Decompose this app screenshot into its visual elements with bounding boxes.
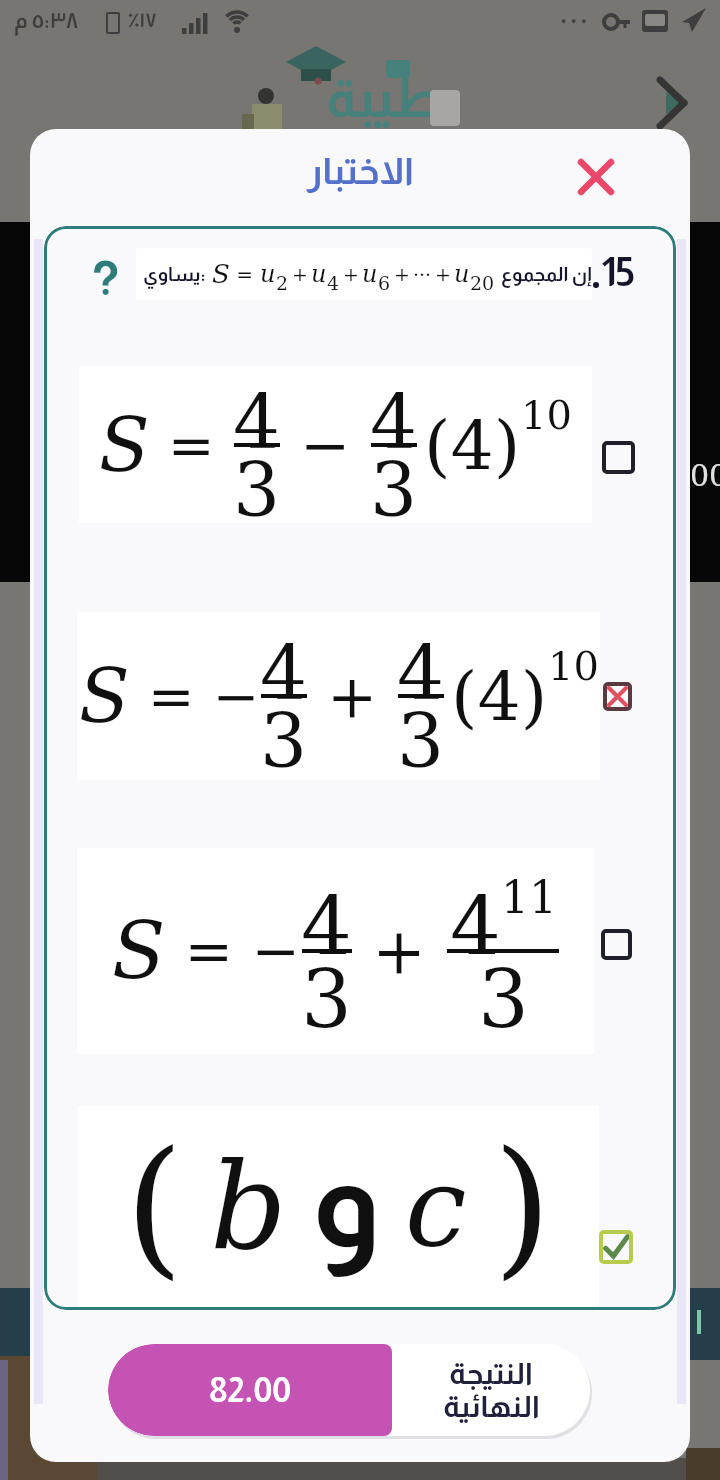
staticText: ··· [413,263,432,285]
staticText: = − [130,664,260,729]
staticText: + [308,661,397,731]
staticText: 00 [690,458,720,493]
staticText: u [260,260,276,288]
staticText: u [362,260,378,288]
staticText: 4 [397,630,445,694]
staticText: S [112,906,166,997]
staticText: ( [125,1119,184,1294]
staticText: + [343,263,359,285]
staticText: 3 [478,953,529,1022]
staticText: S [99,402,150,488]
staticText: c [405,1143,467,1271]
staticText: • • • [560,10,588,27]
staticText: 15 [601,250,635,295]
staticText: إن المجموع [501,264,592,285]
staticText: u [454,260,470,288]
staticText: = − [166,917,301,985]
staticText: ٪١٧ [128,9,157,31]
staticText: 3 [370,447,418,511]
staticText: و [311,1131,381,1274]
staticText: 20 [470,272,495,294]
staticText: 3 [260,698,308,762]
staticText: النتيجة [449,1357,533,1390]
staticText: (4) [451,657,548,736]
staticText: + [352,914,447,989]
staticText: + [292,263,308,285]
staticText: u [311,260,327,288]
staticText: 4 [233,379,281,443]
staticText: 11 [501,872,557,923]
staticText: يساوي: [143,264,206,285]
staticText: + [435,263,451,285]
staticText: طيبة [326,68,444,128]
staticText: 6 [378,272,391,294]
staticText: S [212,259,230,289]
staticText: = [230,263,260,286]
staticText: 10 [521,392,572,439]
staticText: ? [91,252,120,306]
staticText: 3 [397,698,445,762]
staticText: + [394,263,410,285]
staticText: 3 [301,953,352,1022]
staticText: الاختبار [307,151,414,192]
staticText: 2 [276,272,289,294]
staticText: S [79,653,130,739]
staticText: = [150,413,233,478]
staticText: 4 [260,630,308,694]
staticText: − [281,410,370,480]
staticText: 4 [370,379,418,443]
staticText: b [210,1137,287,1277]
staticText: 82.00 [209,1371,292,1409]
staticText: 4 [301,880,352,949]
staticText: 4 [450,880,501,949]
staticText: 3 [233,447,281,511]
staticText: 4 [327,272,340,294]
staticText: النهائية [443,1390,540,1423]
staticText: (4) [424,406,521,485]
staticText: ) [493,1119,552,1294]
staticText: ٥:٣٨ م [14,8,79,33]
staticText: 10 [548,643,599,690]
